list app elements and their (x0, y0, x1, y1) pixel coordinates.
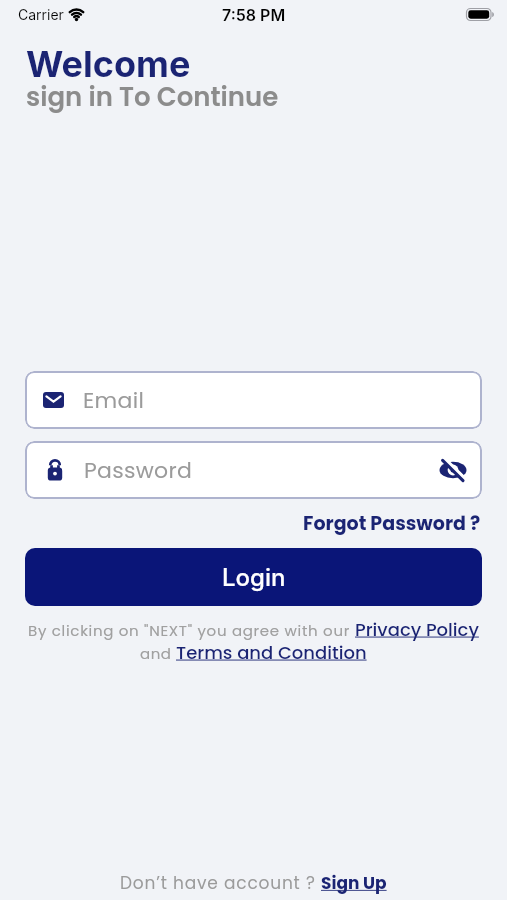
staticText: and (140, 643, 176, 664)
staticText: Password (84, 455, 193, 486)
staticText: Email (83, 385, 145, 416)
button[interactable]: Sign Up (321, 871, 387, 895)
staticText: Forgot Password ? (303, 510, 481, 537)
staticText: Login (222, 563, 286, 592)
button[interactable]: Forgot Password ? (303, 510, 481, 537)
button[interactable]: Privacy Policy (355, 617, 479, 642)
button[interactable]: Password (25, 441, 482, 499)
staticText: 7:58 PM (222, 5, 286, 24)
button[interactable]: Login (25, 548, 482, 606)
staticText: By clicking on "NEXT" you agree with our (28, 620, 355, 641)
button[interactable]: Email (25, 371, 482, 429)
staticText: sign in To Continue (26, 79, 279, 115)
button[interactable]: Terms and Condition (176, 640, 367, 665)
button[interactable] (439, 458, 467, 482)
staticText: Don’t have account ? (120, 871, 321, 895)
staticText: Carrier (18, 6, 64, 23)
staticText: Welcome (26, 42, 191, 86)
